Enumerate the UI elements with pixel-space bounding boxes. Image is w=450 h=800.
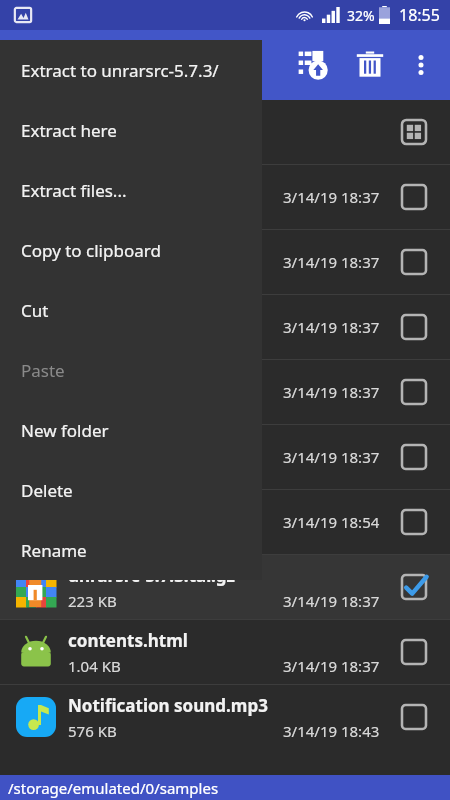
staticText: Copy to clipboard [21, 239, 161, 262]
button[interactable]: contents.html [0, 620, 450, 684]
button[interactable]: Extract here [0, 100, 262, 160]
button[interactable]: 3/14/19 18:37 [0, 360, 450, 424]
button[interactable]: Select [392, 240, 436, 284]
button[interactable]: Select [392, 175, 436, 219]
button[interactable]: Delete [342, 37, 398, 93]
button[interactable]: Extract to unrarsrc-5.7.3/ [0, 40, 262, 100]
button[interactable]: Select [392, 305, 436, 349]
staticText: contents.html [68, 629, 188, 652]
staticText: New folder [21, 419, 109, 442]
button[interactable]: 3/14/19 18:37 [0, 165, 450, 229]
button[interactable]: Select [392, 630, 436, 674]
staticText: 3/14/19 18:37 [283, 447, 380, 467]
staticText: Device storage [68, 109, 179, 131]
button[interactable]: Cut [0, 280, 262, 340]
staticText: Notification sound.mp3 [68, 694, 268, 717]
button[interactable]: Select [392, 370, 436, 414]
button[interactable]: Notification sound.mp3 [0, 685, 450, 749]
staticText: 3/14/19 18:37 [283, 656, 380, 676]
staticText: 18:55 [399, 4, 440, 26]
button[interactable]: 3/14/19 18:37 [0, 230, 450, 294]
button[interactable]: 3/14/19 18:37 [0, 295, 450, 359]
staticText: /storage/emulated/0/samples [8, 778, 219, 798]
staticText: Rename [21, 539, 87, 562]
staticText: 3/14/19 18:54 [283, 512, 380, 532]
button[interactable]: Extract files... [0, 160, 262, 220]
staticText: 3/14/19 18:37 [283, 252, 380, 272]
button[interactable]: Device storage [0, 100, 450, 164]
button[interactable]: Select [392, 565, 436, 609]
staticText: unrarsrc-5.7.3.tar.gz [68, 564, 235, 587]
button[interactable]: 3/14/19 18:37 [0, 425, 450, 489]
button: Paste [0, 340, 262, 400]
button[interactable]: Rename [0, 520, 262, 580]
button[interactable]: Select [392, 500, 436, 544]
staticText: 32% [347, 6, 375, 25]
staticText: 3/14/19 18:37 [283, 317, 380, 337]
staticText: Delete [21, 479, 73, 502]
staticText: Cut [21, 299, 49, 322]
staticText: 576 KB [68, 721, 117, 741]
staticText: 3/14/19 18:37 [283, 382, 380, 402]
button[interactable]: More options [398, 42, 444, 88]
button[interactable]: 3/14/19 18:54 [0, 490, 450, 554]
staticText: Paste [21, 359, 65, 382]
button[interactable]: Extract [286, 37, 342, 93]
staticText: 2 GB / 11.7 GB [68, 135, 169, 155]
staticText: Extract here [21, 119, 117, 142]
staticText: 3/14/19 18:37 [283, 187, 380, 207]
staticText: 3/14/19 18:43 [283, 721, 380, 741]
button[interactable]: Select [392, 695, 436, 739]
button[interactable]: Delete [0, 460, 262, 520]
button[interactable]: New folder [0, 400, 262, 460]
staticText: 3/14/19 18:37 [283, 591, 380, 611]
staticText: 1.04 KB [68, 656, 121, 676]
staticText: Extract to unrarsrc-5.7.3/ [21, 59, 219, 82]
staticText: Extract files... [21, 179, 127, 202]
button[interactable]: unrarsrc-5.7.3.tar.gz [0, 555, 450, 619]
button[interactable]: Copy to clipboard [0, 220, 262, 280]
button[interactable]: Select [392, 435, 436, 479]
button[interactable]: Storage [392, 110, 436, 154]
staticText: 223 KB [68, 591, 117, 611]
